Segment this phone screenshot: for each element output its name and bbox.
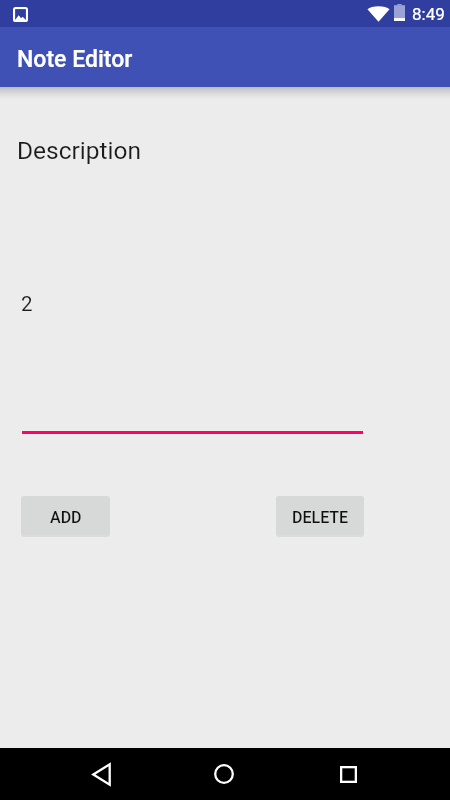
staticText: ADD	[50, 508, 82, 527]
staticText: Note Editor	[17, 46, 133, 73]
staticText: 2	[21, 292, 33, 316]
other: Screenshot captured	[13, 7, 28, 22]
other: Wi-Fi	[367, 5, 390, 22]
staticText: Description	[17, 136, 142, 165]
staticText: 8:49	[412, 4, 445, 24]
button[interactable]: DELETE	[276, 496, 364, 535]
button[interactable]: Home	[200, 750, 248, 798]
other: Battery	[394, 4, 405, 21]
button[interactable]: Back	[77, 750, 125, 798]
button[interactable]: ADD	[21, 496, 110, 535]
staticText: DELETE	[292, 508, 349, 527]
button[interactable]: Recent apps	[324, 750, 372, 798]
